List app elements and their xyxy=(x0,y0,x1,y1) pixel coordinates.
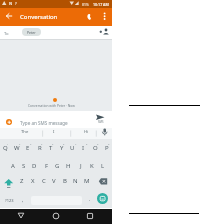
staticText: 5 xyxy=(52,143,54,146)
staticText: N xyxy=(73,177,78,185)
staticText: W xyxy=(14,144,20,152)
button[interactable] xyxy=(15,210,27,222)
staticText: K xyxy=(90,162,94,170)
button[interactable]: Q xyxy=(0,141,11,155)
button[interactable]: Z xyxy=(16,174,27,188)
button[interactable] xyxy=(98,177,109,186)
staticText: 1 xyxy=(7,143,9,146)
button[interactable]: L xyxy=(97,159,108,173)
button[interactable] xyxy=(84,210,96,222)
staticText: To xyxy=(4,31,9,37)
staticText: 4 xyxy=(41,143,43,146)
staticText: 2 xyxy=(19,143,21,146)
button[interactable]: Peter xyxy=(22,28,41,36)
staticText: T xyxy=(49,144,53,152)
button[interactable]: A xyxy=(7,159,18,173)
staticText: N xyxy=(9,1,13,6)
button[interactable] xyxy=(50,210,62,222)
button[interactable] xyxy=(3,11,14,21)
staticText: M xyxy=(84,177,90,185)
button[interactable]: W xyxy=(11,141,22,155)
button[interactable]: U xyxy=(67,141,78,155)
staticText: V xyxy=(52,177,56,185)
button[interactable]: J xyxy=(75,159,86,173)
button[interactable]: I xyxy=(78,141,89,155)
staticText: Peter xyxy=(27,30,36,35)
button[interactable]: C xyxy=(38,174,49,188)
button[interactable] xyxy=(3,177,15,189)
button[interactable]: P xyxy=(101,141,112,155)
staticText: B xyxy=(63,177,67,185)
staticText: O xyxy=(93,144,98,152)
staticText: 0 xyxy=(108,143,110,146)
staticText: X xyxy=(31,177,35,185)
button[interactable]: F xyxy=(41,159,52,173)
staticText: 10:17 AM xyxy=(93,2,109,7)
staticText: Conversation xyxy=(20,13,58,21)
button[interactable]: M xyxy=(81,174,92,188)
staticText: S xyxy=(22,162,26,170)
button[interactable] xyxy=(99,28,110,36)
staticText: Z xyxy=(20,177,24,185)
staticText: Conversation with Peter · Now xyxy=(28,103,75,107)
button[interactable]: B xyxy=(59,174,70,188)
staticText: ?123 xyxy=(5,198,14,203)
staticText: P xyxy=(105,144,109,152)
staticText: D xyxy=(32,162,37,170)
staticText: Hi xyxy=(84,129,89,135)
staticText: F xyxy=(45,162,49,170)
button[interactable]: N xyxy=(70,174,81,188)
staticText: Y xyxy=(60,144,64,152)
button[interactable]: D xyxy=(29,159,40,173)
button[interactable]: Y xyxy=(56,141,67,155)
staticText: ? xyxy=(15,1,17,6)
staticText: 8 xyxy=(86,143,88,146)
button[interactable]: X xyxy=(27,174,38,188)
staticText: , xyxy=(22,197,24,204)
staticText: H xyxy=(66,162,71,170)
staticText: Q xyxy=(3,144,8,152)
button[interactable] xyxy=(6,119,12,125)
button[interactable]: V xyxy=(48,174,59,188)
button[interactable]: S xyxy=(18,159,29,173)
button[interactable]: T xyxy=(45,141,56,155)
button[interactable] xyxy=(0,112,112,128)
staticText: C xyxy=(42,177,46,185)
staticText: SMS xyxy=(98,120,104,124)
button[interactable]: H xyxy=(63,159,74,173)
staticText: 6 xyxy=(63,143,65,146)
button[interactable]: G xyxy=(52,159,63,173)
staticText: U xyxy=(70,144,75,152)
staticText: The xyxy=(21,129,29,135)
staticText: A xyxy=(11,162,15,170)
staticText: 81% xyxy=(82,2,89,7)
staticText: I xyxy=(82,144,85,152)
staticText: J xyxy=(80,162,82,170)
staticText: R xyxy=(38,144,42,152)
staticText: 7 xyxy=(75,143,77,146)
button[interactable]: SMS xyxy=(95,114,107,126)
staticText: E xyxy=(26,144,30,152)
staticText: 3 xyxy=(30,143,32,146)
staticText: 9 xyxy=(97,143,99,146)
staticText: G xyxy=(55,162,60,170)
button[interactable]: R xyxy=(34,141,45,155)
staticText: . xyxy=(89,196,91,203)
staticText: I xyxy=(53,129,55,135)
button[interactable]: K xyxy=(86,159,97,173)
button[interactable] xyxy=(97,193,108,204)
staticText: L xyxy=(101,162,105,170)
staticText: Type an SMS message xyxy=(20,120,68,126)
button[interactable] xyxy=(101,11,109,22)
button[interactable]: E xyxy=(22,141,33,155)
button[interactable] xyxy=(86,12,96,21)
button[interactable]: O xyxy=(90,141,101,155)
